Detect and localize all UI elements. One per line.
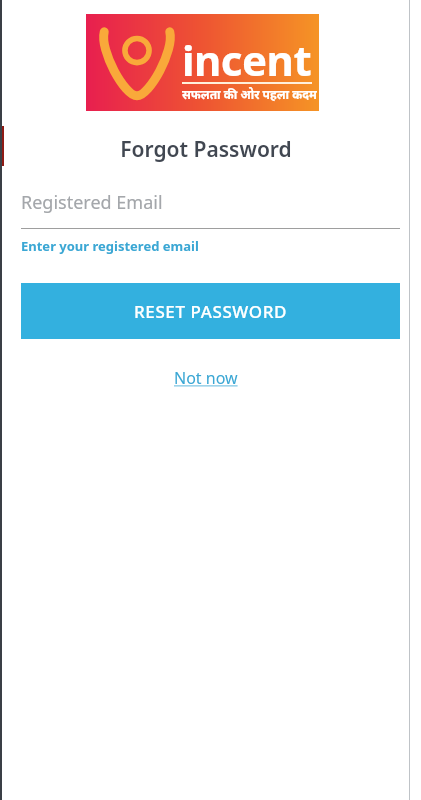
button[interactable]: RESET PASSWORD bbox=[21, 283, 400, 339]
staticText: RESET PASSWORD bbox=[134, 300, 288, 323]
staticText: Not now bbox=[174, 367, 238, 389]
staticText: Forgot Password bbox=[120, 135, 292, 164]
staticText: सफलता की ओर पहला कदम bbox=[182, 86, 317, 102]
button[interactable]: Registered Email bbox=[21, 190, 400, 255]
staticText: Enter your registered email bbox=[21, 237, 199, 255]
staticText: incent bbox=[182, 31, 312, 88]
staticText: Registered Email bbox=[21, 190, 163, 215]
button[interactable]: Not now bbox=[164, 363, 248, 393]
